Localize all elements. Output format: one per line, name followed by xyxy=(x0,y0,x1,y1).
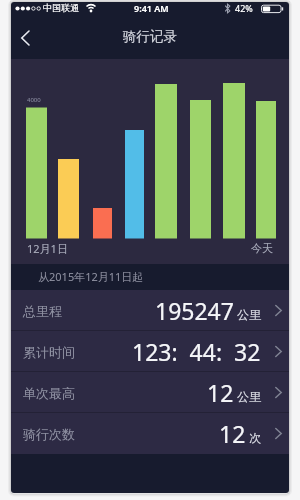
staticText: 12 xyxy=(219,418,246,449)
staticText: 次 xyxy=(249,430,261,445)
staticText: 123: 44: 32 xyxy=(132,336,261,367)
staticText: 单次最高 xyxy=(23,385,75,401)
staticText: 累计时间 xyxy=(23,344,75,360)
staticText: 9:41 AM xyxy=(134,2,169,14)
button[interactable] xyxy=(11,17,39,59)
staticText: 今天 xyxy=(251,241,273,255)
button[interactable]: 单次最高 xyxy=(11,372,289,413)
staticText: 12月1日 xyxy=(27,241,68,256)
button[interactable]: 总里程 xyxy=(11,290,289,331)
button[interactable]: 累计时间 xyxy=(11,331,289,372)
staticText: 中国联通 xyxy=(43,2,79,13)
staticText: 骑行记录 xyxy=(123,28,177,45)
staticText: 42% xyxy=(235,2,253,14)
staticText: 195247 xyxy=(155,295,234,326)
staticText: 12 xyxy=(207,377,234,408)
staticText: 公里 xyxy=(237,307,261,322)
staticText: 从2015年12月11日起 xyxy=(38,269,144,284)
staticText: 公里 xyxy=(237,389,261,404)
staticText: 4000 xyxy=(27,96,41,104)
button[interactable]: 骑行次数 xyxy=(11,413,289,454)
staticText: 总里程 xyxy=(23,303,62,319)
staticText: 骑行次数 xyxy=(23,426,75,442)
